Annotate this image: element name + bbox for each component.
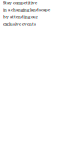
staticText: Stay competitive in a changing landscape… bbox=[3, 0, 50, 27]
